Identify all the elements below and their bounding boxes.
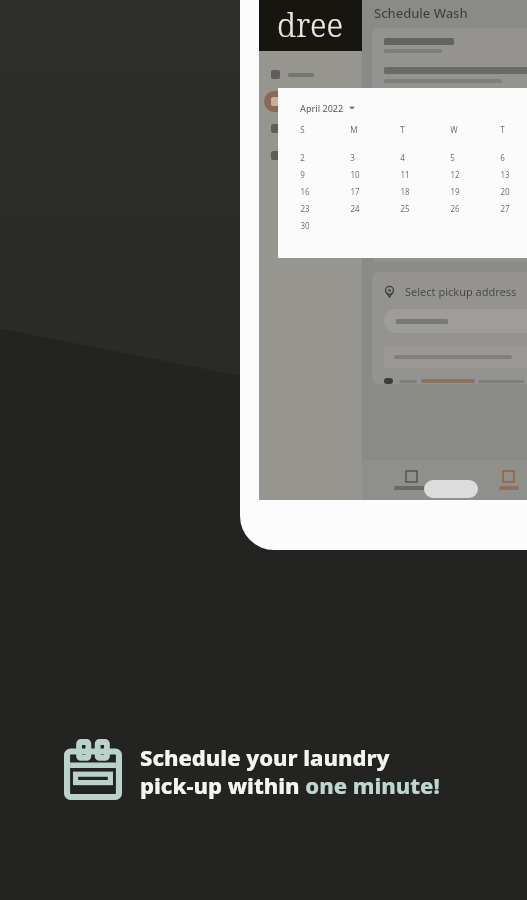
button[interactable]: 26 bbox=[450, 203, 500, 213]
button[interactable]: 16 bbox=[300, 186, 350, 196]
staticText: 23 bbox=[300, 203, 310, 213]
staticText: 11 bbox=[400, 169, 410, 179]
staticText: dree bbox=[277, 3, 344, 47]
staticText: Schedule your laundry pick-up within one… bbox=[140, 742, 440, 800]
button[interactable]: W bbox=[450, 124, 500, 134]
button[interactable]: M bbox=[350, 124, 400, 134]
staticText: 3 bbox=[350, 152, 355, 162]
staticText: 16 bbox=[300, 186, 310, 196]
button[interactable]: 5 bbox=[450, 152, 500, 162]
button[interactable]: 6 bbox=[500, 152, 527, 162]
button[interactable]: T bbox=[500, 124, 527, 134]
button[interactable]: S bbox=[300, 124, 350, 134]
button[interactable]: 11 bbox=[400, 169, 450, 179]
button[interactable]: 20 bbox=[500, 186, 527, 196]
staticText: 2 bbox=[300, 152, 305, 162]
staticText: 13 bbox=[500, 169, 510, 179]
button[interactable]: 12 bbox=[450, 169, 500, 179]
button[interactable]: 19 bbox=[450, 186, 500, 196]
button[interactable] bbox=[264, 118, 357, 139]
staticText: 19 bbox=[450, 186, 460, 196]
button[interactable] bbox=[264, 91, 357, 112]
button[interactable]: 30 bbox=[300, 220, 350, 230]
button[interactable]: 23 bbox=[300, 203, 350, 213]
staticText: 18 bbox=[400, 186, 410, 196]
other: Schedule bbox=[64, 742, 122, 800]
staticText: 9 bbox=[300, 169, 305, 179]
button[interactable] bbox=[384, 309, 527, 333]
button[interactable]: 2 bbox=[300, 152, 350, 162]
staticText: Schedule Wash bbox=[374, 4, 468, 22]
button[interactable]: 25 bbox=[400, 203, 450, 213]
button[interactable] bbox=[264, 64, 357, 85]
staticText: T bbox=[500, 124, 505, 134]
staticText: 27 bbox=[500, 203, 510, 213]
staticText: 30 bbox=[300, 220, 310, 230]
button[interactable] bbox=[264, 145, 357, 166]
staticText: T bbox=[400, 124, 405, 134]
staticText: 17 bbox=[350, 186, 360, 196]
staticText: M bbox=[350, 124, 358, 134]
staticText: Select pickup address bbox=[405, 284, 517, 299]
staticText: 12 bbox=[450, 169, 460, 179]
staticText: 4 bbox=[400, 152, 405, 162]
staticText: 5 bbox=[450, 152, 455, 162]
staticText: 10 bbox=[350, 169, 360, 179]
button[interactable]: 10 bbox=[350, 169, 400, 179]
button[interactable]: 24 bbox=[350, 203, 400, 213]
button[interactable]: 3 bbox=[350, 152, 400, 162]
staticText: 6 bbox=[500, 152, 505, 162]
staticText: 20 bbox=[500, 186, 510, 196]
button[interactable]: 17 bbox=[350, 186, 400, 196]
staticText: 24 bbox=[350, 203, 360, 213]
button[interactable]: 18 bbox=[400, 186, 450, 196]
button[interactable]: Create bbox=[460, 460, 527, 500]
staticText: S bbox=[300, 124, 305, 134]
button[interactable]: 27 bbox=[500, 203, 527, 213]
staticText: April 2022 bbox=[300, 102, 344, 114]
button[interactable]: 13 bbox=[500, 169, 527, 179]
staticText: W bbox=[450, 124, 458, 134]
button[interactable] bbox=[384, 346, 527, 368]
button[interactable]: T bbox=[400, 124, 450, 134]
button[interactable]: 4 bbox=[400, 152, 450, 162]
button[interactable]: Rooms & Plans bbox=[362, 460, 460, 500]
button[interactable]: 9 bbox=[300, 169, 350, 179]
staticText: 25 bbox=[400, 203, 410, 213]
staticText: 26 bbox=[450, 203, 460, 213]
